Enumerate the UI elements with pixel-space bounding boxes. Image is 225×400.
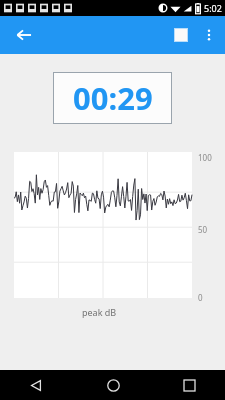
button[interactable]: Recent apps [173, 370, 205, 400]
staticText: peak dB [82, 306, 117, 318]
staticText: 100 [198, 152, 212, 163]
staticText: 5:02 [204, 2, 222, 14]
staticText: 0 [198, 292, 203, 303]
button[interactable]: 00:29 [53, 72, 172, 124]
button[interactable]: Home [97, 370, 129, 400]
button[interactable]: More options [196, 22, 222, 48]
staticText: 00:29 [73, 77, 153, 119]
button[interactable]: Stop recording [166, 20, 196, 50]
button[interactable]: Back [20, 370, 52, 400]
staticText: 50 [198, 224, 208, 235]
button[interactable]: Back [9, 20, 39, 50]
